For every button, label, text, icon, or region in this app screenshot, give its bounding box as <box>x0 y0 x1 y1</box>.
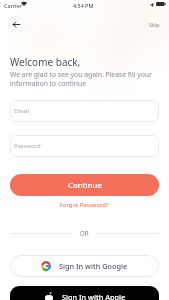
button[interactable]: Back <box>8 16 25 33</box>
staticText: Sign In with Apple <box>62 292 126 300</box>
staticText: Sign In with Google <box>59 261 128 271</box>
staticText: Continue <box>68 180 102 191</box>
staticText: Welcome back, <box>10 55 81 69</box>
staticText: 4:54 PM <box>73 2 94 9</box>
staticText: Carrier <box>4 2 22 9</box>
button[interactable]: Forgot Password? <box>58 199 111 211</box>
staticText: Password <box>14 142 41 150</box>
button[interactable]: Skip <box>141 18 169 31</box>
staticText: Email <box>14 107 30 115</box>
button[interactable]: Sign In with Apple <box>10 286 159 300</box>
staticText: OR <box>80 229 89 237</box>
button[interactable]: Sign In with Google <box>10 255 159 277</box>
button[interactable]: Email <box>10 100 159 122</box>
button[interactable]: Continue <box>10 174 159 196</box>
staticText: We are glad to see you again. Please fil… <box>10 70 169 88</box>
button[interactable]: Password <box>10 135 159 157</box>
staticText: Skip <box>149 21 160 28</box>
